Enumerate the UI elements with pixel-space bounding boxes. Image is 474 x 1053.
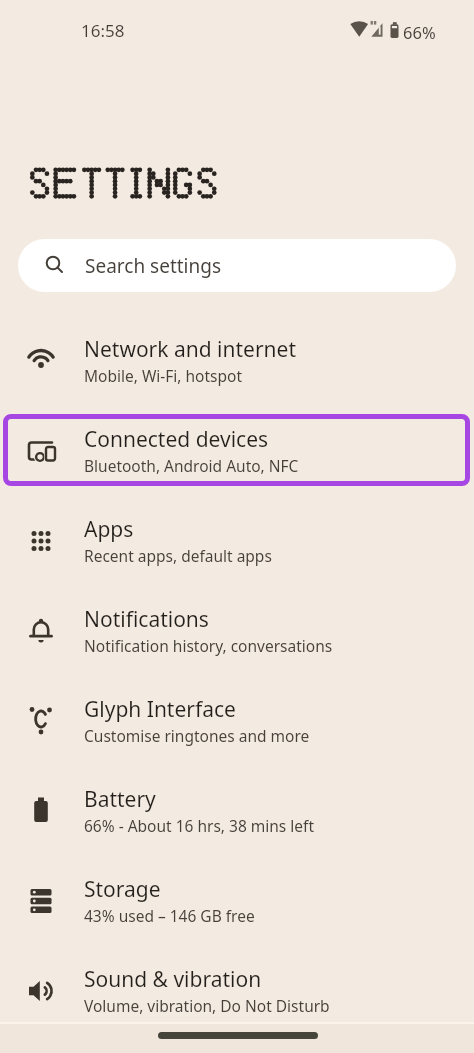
button[interactable]: Network and internet xyxy=(0,316,474,406)
button[interactable]: Sound & vibration xyxy=(0,946,474,1036)
staticText: Customise ringtones and more xyxy=(84,725,310,746)
staticText: 16:58 xyxy=(81,19,125,42)
staticText: 66% - About 16 hrs, 38 mins left xyxy=(84,815,314,836)
staticText: Volume, vibration, Do Not Disturb xyxy=(84,995,330,1016)
button[interactable]: Notifications xyxy=(0,586,474,676)
staticText: Connected devices xyxy=(84,425,269,454)
staticText: Apps xyxy=(84,515,134,544)
button[interactable]: Glyph Interface xyxy=(0,676,474,766)
staticText: Search settings xyxy=(85,253,222,279)
staticText: Network and internet xyxy=(84,335,296,364)
staticText: Battery xyxy=(84,785,156,814)
staticText: Glyph Interface xyxy=(84,695,236,724)
button[interactable]: Connected devices xyxy=(0,406,474,496)
staticText: Sound & vibration xyxy=(84,965,262,994)
staticText: Bluetooth, Android Auto, NFC xyxy=(84,455,299,476)
button[interactable]: Battery xyxy=(0,766,474,856)
staticText: Notification history, conversations xyxy=(84,635,333,656)
staticText: Mobile, Wi-Fi, hotspot xyxy=(84,365,243,386)
staticText: Storage xyxy=(84,875,161,904)
staticText: Recent apps, default apps xyxy=(84,545,272,566)
staticText: 43% used – 146 GB free xyxy=(84,905,255,926)
staticText: Notifications xyxy=(84,605,209,634)
button[interactable]: Storage xyxy=(0,856,474,946)
button[interactable]: Apps xyxy=(0,496,474,586)
button[interactable] xyxy=(158,1032,318,1039)
staticText: 66% xyxy=(403,21,436,43)
button[interactable]: Search settings xyxy=(18,239,456,292)
